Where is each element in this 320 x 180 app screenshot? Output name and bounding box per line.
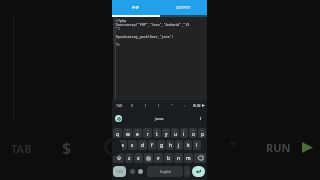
button[interactable]: u (171, 128, 179, 138)
staticText: n (177, 155, 180, 162)
button[interactable]: Enter (192, 166, 205, 177)
button[interactable]: s (128, 140, 137, 150)
button[interactable]: ) (152, 100, 165, 111)
button[interactable]: l (193, 140, 201, 150)
button[interactable]: x (134, 153, 143, 163)
staticText: g (160, 142, 163, 149)
staticText: d (141, 142, 144, 149)
staticText: a (121, 142, 124, 149)
staticText: RUN (193, 103, 201, 108)
button[interactable]: m (184, 153, 193, 163)
button[interactable]: Emoji (130, 169, 135, 174)
staticText: m (186, 155, 191, 162)
staticText: 6 (113, 38, 115, 42)
button[interactable]: t (153, 128, 161, 138)
staticText: $push=array_push($arr,"java") (116, 34, 174, 38)
button[interactable]: Microphone (197, 115, 204, 122)
button[interactable]: ( (139, 100, 152, 111)
button[interactable]: OUTPUT (159, 0, 207, 15)
staticText: j (178, 142, 180, 149)
staticText: TAB (116, 103, 123, 108)
staticText: 5 (156, 128, 158, 131)
staticText: 2 (113, 22, 115, 26)
staticText: 1 (113, 18, 115, 22)
button[interactable]: r (143, 128, 152, 138)
staticText: q (116, 131, 119, 138)
button[interactable]: PHP (112, 0, 159, 15)
staticText: l (196, 142, 198, 149)
staticText: y (165, 131, 168, 138)
staticText: PHP (132, 5, 140, 10)
button[interactable]: Voice typing (115, 115, 122, 122)
button[interactable]: w (123, 128, 132, 138)
staticText: t (156, 131, 158, 138)
staticText: 8 (183, 128, 185, 131)
button[interactable]: English (147, 166, 183, 177)
staticText: 9 (192, 128, 194, 131)
button[interactable]: " (165, 100, 178, 111)
staticText: 7 (113, 42, 115, 46)
staticText: i (183, 131, 185, 138)
button[interactable]: Backspace (194, 153, 206, 163)
staticText: u (174, 131, 177, 138)
button[interactable]: : (178, 100, 191, 111)
staticText: $arr=array("PHP","Java","Android","JS (116, 22, 190, 26)
button[interactable]: p (198, 128, 206, 138)
staticText: 3 (113, 26, 115, 30)
button[interactable]: TAB (112, 100, 126, 111)
staticText: 5 (113, 34, 115, 38)
button[interactable]: a (118, 140, 127, 150)
staticText: z (128, 155, 131, 162)
staticText: p (201, 131, 204, 138)
button[interactable]: i (180, 128, 188, 138)
staticText: ( (145, 103, 147, 108)
button[interactable]: v (154, 153, 163, 163)
staticText: 7 (174, 128, 176, 131)
button[interactable]: q (113, 128, 122, 138)
button[interactable]: Period (184, 166, 190, 177)
staticText: r (147, 131, 149, 138)
staticText: javas (155, 116, 164, 121)
button[interactable]: ?123 (113, 166, 126, 177)
button[interactable]: Shift (113, 153, 124, 163)
button[interactable]: b (164, 153, 173, 163)
button[interactable]: z (125, 153, 133, 163)
staticText: <?php (116, 18, 126, 22)
staticText: ?> (116, 42, 120, 46)
button[interactable]: j (175, 140, 183, 150)
staticText: TAB (11, 141, 32, 156)
staticText: ?123 (116, 170, 123, 174)
button[interactable]: $ (126, 100, 139, 111)
staticText: $ (62, 137, 72, 159)
staticText: " (230, 137, 237, 156)
button[interactable]: n (174, 153, 183, 163)
button[interactable]: h (166, 140, 174, 150)
staticText: k (187, 142, 190, 149)
staticText: x (137, 155, 140, 162)
button[interactable]: k (184, 140, 192, 150)
staticText: . (187, 169, 188, 174)
button[interactable]: y (162, 128, 170, 138)
staticText: v (157, 155, 160, 162)
button[interactable]: e (133, 128, 142, 138)
staticText: 3 (137, 128, 139, 131)
staticText: OUTPUT (176, 5, 191, 10)
staticText: s (131, 142, 134, 149)
staticText: RUN (266, 140, 291, 155)
button[interactable]: o (189, 128, 197, 138)
button[interactable]: g (157, 140, 165, 150)
button[interactable]: f (148, 140, 156, 150)
staticText: English (160, 170, 171, 174)
staticText: o (192, 131, 195, 138)
button[interactable]: RUN (191, 100, 207, 111)
staticText: ) (158, 103, 160, 108)
staticText: $ (131, 103, 134, 108)
staticText: ") (116, 26, 120, 30)
staticText: 1 (117, 128, 119, 131)
button[interactable]: Settings (138, 169, 143, 174)
staticText: 6 (165, 128, 167, 131)
button[interactable] (144, 153, 153, 163)
button[interactable]: d (138, 140, 147, 150)
